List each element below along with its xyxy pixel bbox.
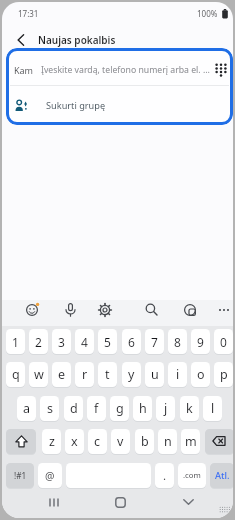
button[interactable] [108, 492, 132, 512]
staticText: 5 [104, 334, 111, 350]
button[interactable]: p [214, 362, 233, 387]
staticText: 7 [151, 334, 158, 350]
button[interactable]: 8 [168, 329, 187, 354]
staticText: 3 [58, 334, 65, 350]
button[interactable] [60, 299, 80, 320]
button[interactable] [214, 299, 233, 320]
button[interactable]: x [65, 429, 84, 454]
button[interactable]: n [158, 429, 177, 454]
staticText: l [211, 400, 215, 417]
staticText: Kam [14, 64, 34, 76]
button[interactable]: 0 [214, 329, 233, 354]
button[interactable] [6, 429, 36, 454]
staticText: h [139, 400, 147, 417]
staticText: m [185, 433, 197, 450]
staticText: x [71, 433, 78, 450]
button[interactable]: 7 [145, 329, 164, 354]
button[interactable]: m [181, 429, 200, 454]
staticText: .com [183, 470, 201, 481]
staticText: !#1 [14, 470, 27, 481]
button[interactable]: o [191, 362, 210, 387]
staticText: 4 [81, 334, 88, 350]
button[interactable] [180, 299, 200, 320]
button[interactable]: l [203, 396, 222, 421]
button[interactable]: 6 [122, 329, 141, 354]
button[interactable]: f [87, 396, 106, 421]
button[interactable]: j [156, 396, 175, 421]
button[interactable] [11, 31, 31, 49]
button[interactable]: u [145, 362, 164, 387]
button[interactable]: 3 [52, 329, 71, 354]
staticText: 9 [197, 334, 204, 350]
staticText: 1 [12, 334, 19, 350]
staticText: p [220, 366, 228, 383]
staticText: 0 [220, 334, 227, 350]
staticText: c [94, 433, 101, 450]
button[interactable]: q [6, 362, 25, 387]
staticText: u [151, 366, 159, 383]
staticText: z [49, 433, 55, 450]
staticText: i [176, 366, 180, 383]
staticText: k [186, 400, 193, 417]
staticText: 100% [197, 8, 218, 19]
button[interactable]: @ [38, 463, 62, 488]
button[interactable]: 2 [29, 329, 48, 354]
button[interactable]: g [110, 396, 129, 421]
button[interactable] [176, 492, 200, 512]
staticText: g [116, 400, 124, 417]
staticText: . [163, 468, 167, 484]
button[interactable]: 4 [75, 329, 94, 354]
button[interactable]: h [133, 396, 152, 421]
staticText: j [164, 400, 168, 417]
button[interactable]: .com [178, 463, 206, 488]
staticText: Sukurti grupę [46, 99, 106, 112]
button[interactable]: y [122, 362, 141, 387]
button[interactable]: t [98, 362, 117, 387]
button[interactable]: s [40, 396, 59, 421]
button[interactable]: 5 [98, 329, 117, 354]
staticText: w [34, 366, 44, 383]
button[interactable] [8, 86, 230, 123]
staticText: 2 [35, 334, 42, 350]
button[interactable]: !#1 [6, 463, 34, 488]
staticText: t [105, 366, 110, 383]
button[interactable]: e [52, 362, 71, 387]
staticText: Atl. [215, 469, 230, 482]
staticText: e [58, 366, 66, 383]
button[interactable]: r [75, 362, 94, 387]
button[interactable]: b [135, 429, 154, 454]
staticText: n [164, 433, 172, 450]
staticText: v [117, 433, 124, 450]
button[interactable]: c [88, 429, 107, 454]
button[interactable] [22, 299, 43, 320]
staticText: 8 [174, 334, 181, 350]
button[interactable] [42, 492, 66, 512]
staticText: y [128, 366, 135, 383]
staticText: 17:31 [18, 8, 39, 19]
button[interactable]: w [29, 362, 48, 387]
staticText: r [82, 366, 88, 383]
staticText: q [12, 366, 20, 383]
button[interactable] [8, 50, 230, 84]
button[interactable]: Atl. [210, 463, 233, 488]
staticText: s [47, 400, 53, 417]
button[interactable]: . [155, 463, 174, 488]
button[interactable] [95, 299, 115, 320]
staticText: 6 [128, 334, 135, 350]
button[interactable] [205, 429, 233, 454]
staticText: @ [45, 469, 55, 483]
button[interactable]: v [111, 429, 130, 454]
button[interactable]: 1 [6, 329, 25, 354]
button[interactable] [211, 60, 231, 79]
button[interactable]: a [17, 396, 36, 421]
button[interactable]: 9 [191, 329, 210, 354]
button[interactable]: d [64, 396, 83, 421]
staticText: Naujas pokalbis [38, 33, 116, 47]
staticText: b [141, 433, 149, 450]
button[interactable]: z [42, 429, 61, 454]
button[interactable] [141, 299, 161, 320]
staticText: Įveskite vardą, telefono numerį arba el.… [41, 64, 210, 76]
button[interactable]: k [180, 396, 199, 421]
button[interactable]: i [168, 362, 187, 387]
